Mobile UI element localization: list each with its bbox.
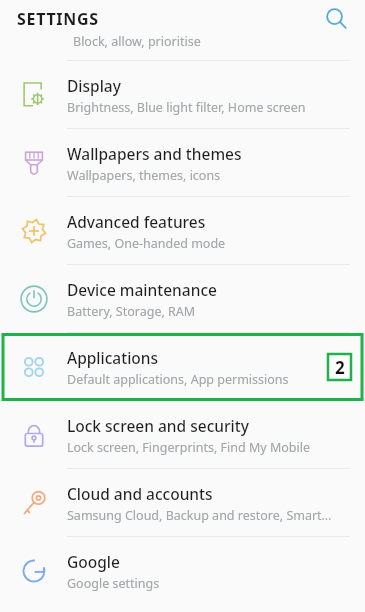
button[interactable]: Search: [319, 2, 353, 36]
staticText: Brightness, Blue light filter, Home scre…: [67, 99, 306, 116]
staticText: Lock screen and security: [67, 415, 249, 436]
staticText: Samsung Cloud, Backup and restore, Smart…: [67, 507, 332, 524]
staticText: 2: [335, 356, 345, 379]
button[interactable]: Block, allow, prioritise: [0, 38, 365, 61]
button[interactable]: Applications: [0, 333, 365, 401]
staticText: Google settings: [67, 575, 160, 592]
staticText: Google: [67, 551, 120, 572]
staticText: Display: [67, 75, 121, 96]
button[interactable]: Google: [0, 537, 365, 605]
staticText: Device maintenance: [67, 279, 217, 300]
staticText: Wallpapers, themes, icons: [67, 167, 221, 184]
staticText: Default applications, App permissions: [67, 371, 289, 388]
staticText: Games, One-handed mode: [67, 235, 226, 252]
button[interactable]: Wallpapers and themes: [0, 129, 365, 197]
staticText: SETTINGS: [17, 8, 99, 30]
staticText: Advanced features: [67, 211, 206, 232]
button[interactable]: Cloud and accounts: [0, 469, 365, 537]
button[interactable]: Lock screen and security: [0, 401, 365, 469]
staticText: Applications: [67, 347, 159, 368]
staticText: Block, allow, prioritise: [73, 33, 201, 50]
button[interactable]: Advanced features: [0, 197, 365, 265]
staticText: Lock screen, Fingerprints, Find My Mobil…: [67, 439, 311, 456]
staticText: Cloud and accounts: [67, 483, 213, 504]
button[interactable]: Display: [0, 61, 365, 129]
staticText: Wallpapers and themes: [67, 143, 242, 164]
button[interactable]: Device maintenance: [0, 265, 365, 333]
staticText: Battery, Storage, RAM: [67, 303, 196, 320]
